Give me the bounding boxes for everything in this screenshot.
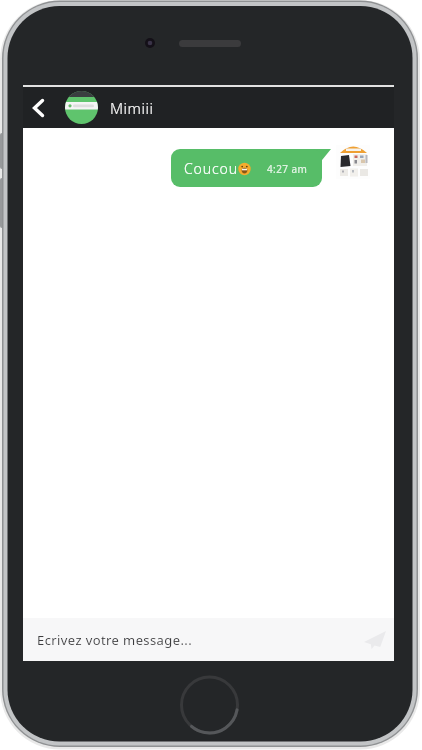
staticText: Ecrivez votre message...	[37, 631, 193, 649]
button[interactable]: Ecrivez votre message...	[23, 618, 394, 661]
button[interactable]	[358, 623, 392, 657]
button[interactable]	[65, 91, 98, 124]
button[interactable]: Coucou	[171, 149, 322, 187]
staticText: Coucou	[184, 159, 238, 178]
staticText: Mimiii	[110, 98, 154, 118]
button[interactable]	[28, 87, 48, 128]
staticText: 4:27 am	[267, 162, 308, 176]
